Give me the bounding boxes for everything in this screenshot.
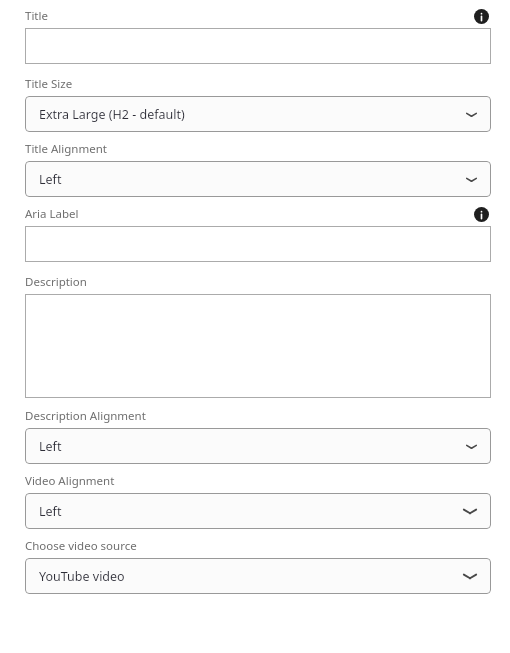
staticText: Extra Large (H2 - default) <box>39 106 185 123</box>
staticText: Left <box>39 438 62 455</box>
button[interactable]: Description input <box>25 294 491 398</box>
staticText: Title Alignment <box>25 141 107 157</box>
staticText: Choose video source <box>25 538 137 554</box>
staticText: Title Size <box>25 76 73 92</box>
button[interactable]: Left <box>25 493 491 529</box>
staticText: Description <box>25 274 87 290</box>
button[interactable]: YouTube video <box>25 558 491 594</box>
staticText: Left <box>39 503 62 520</box>
staticText: YouTube video <box>39 568 125 585</box>
button[interactable]: Extra Large (H2 - default) <box>25 96 491 132</box>
button[interactable]: More information about Aria Label <box>471 206 491 222</box>
staticText: Description Alignment <box>25 408 146 424</box>
staticText: Aria Label <box>25 206 79 222</box>
staticText: Title <box>25 8 48 24</box>
button[interactable]: Title input <box>25 28 491 64</box>
staticText: Video Alignment <box>25 473 115 489</box>
button[interactable]: Left <box>25 428 491 464</box>
staticText: Left <box>39 171 62 188</box>
button[interactable]: More information about Title <box>471 8 491 24</box>
button[interactable]: Left <box>25 161 491 197</box>
button[interactable]: Aria Label input <box>25 226 491 262</box>
